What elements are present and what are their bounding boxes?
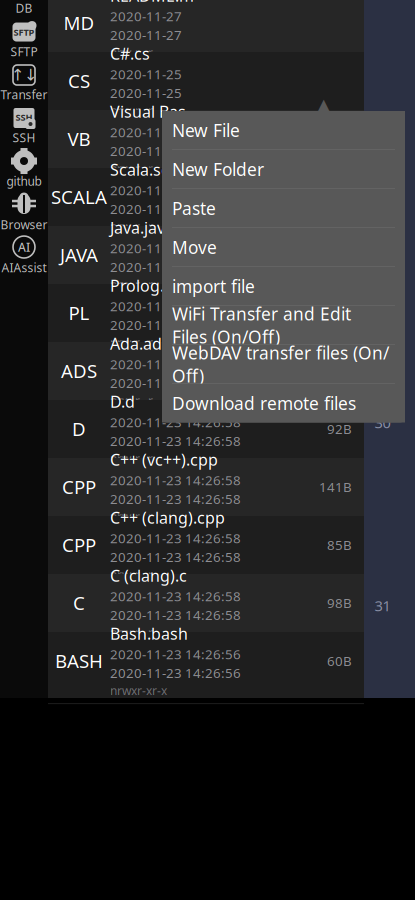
button[interactable]: C [48, 574, 364, 632]
staticText: 92B [327, 420, 352, 438]
button[interactable]: Move [162, 228, 405, 267]
staticText: BASH [55, 648, 103, 673]
button[interactable]: WiFi Transfer and Edit Files (On/Off) [162, 306, 405, 345]
button[interactable]: CS [48, 52, 364, 110]
button[interactable]: New Folder [162, 150, 405, 189]
staticText: WiFi Transfer and Edit Files (On/Off) [172, 302, 351, 348]
staticText: 2020-11-23 14:26:58 [110, 355, 241, 373]
staticText: DB [15, 0, 32, 16]
staticText: 2020-11-23 14:26:58 [110, 413, 241, 431]
button[interactable]: import file [162, 267, 405, 306]
button[interactable]: SFTP [0, 19, 48, 62]
staticText: 2020-11-23 14:26:58 [110, 606, 241, 624]
staticText: C [73, 590, 85, 615]
button[interactable]: Download remote files [162, 384, 405, 422]
button[interactable]: Browser [0, 191, 48, 234]
button[interactable]: JAVA [48, 226, 364, 284]
staticText: AI [18, 239, 30, 255]
staticText: 29 [374, 358, 390, 377]
button[interactable]: CPP [48, 516, 364, 574]
staticText: ▲ [316, 94, 331, 117]
staticText: 60B [327, 652, 352, 670]
staticText: nrw-r--r-- [110, 161, 161, 176]
staticText: CPP [62, 474, 96, 499]
staticText: 2020-11-23 14:26:58 [110, 471, 241, 489]
staticText: SSH [15, 111, 32, 123]
staticText: 85B [327, 536, 352, 554]
staticText: 2020-11-23 14:26:58 [110, 316, 241, 334]
staticText: 2020-11-23 14:26:58 [110, 432, 241, 450]
staticText: 2020-11-25 [110, 123, 182, 141]
staticText: SSH [12, 129, 35, 145]
button[interactable]: SSH [0, 105, 48, 148]
button[interactable]: AI [0, 234, 48, 277]
button[interactable]: ↑↓ [0, 62, 48, 105]
button[interactable]: New File [162, 111, 405, 150]
staticText: Paste [172, 197, 216, 220]
staticText: 2020-11-27 [110, 26, 182, 44]
staticText: ADS [61, 358, 97, 383]
staticText: WebDAV transfer files (On/Off) [172, 341, 389, 387]
staticText: 2020-11-23 14:26:56 [110, 664, 241, 682]
staticText: CPP [62, 532, 96, 557]
staticText: 2020-11-25 14:20:32 [110, 239, 241, 257]
button[interactable]: DB [0, 0, 48, 19]
button[interactable]: VB [48, 110, 364, 168]
button[interactable]: BASH [48, 632, 364, 690]
staticText: SCALA [51, 184, 107, 209]
button[interactable]: ADS [48, 342, 364, 400]
staticText: nrw-r--r-- [110, 451, 161, 466]
staticText: SFTP [13, 26, 34, 38]
staticText: D [72, 416, 86, 441]
staticText: SFTP [10, 43, 37, 59]
staticText: Prolog.pl [110, 275, 178, 296]
staticText: 2020-11-23 14:26:58 [110, 490, 241, 508]
staticText: nrw-r--r-- [110, 567, 161, 582]
button[interactable]: MD [48, 0, 364, 52]
staticText: README.m [110, 0, 194, 6]
button[interactable]: github [0, 148, 48, 191]
staticText: 30 [374, 413, 390, 432]
staticText: 2020-11-25 [110, 200, 182, 218]
staticText: 27 [374, 328, 390, 347]
button[interactable]: CPP [48, 458, 364, 516]
staticText: nrw-r--r-- [110, 103, 161, 118]
staticText: 2020-11-25 [110, 84, 182, 102]
staticText: import file [172, 275, 255, 298]
staticText: 28 [374, 343, 390, 362]
staticText: 2020-11-23 14:26:58 [110, 297, 241, 315]
staticText: 2020-11-23 14:26:58 [110, 548, 241, 566]
staticText: JAVA [60, 242, 98, 267]
button[interactable]: WebDAV transfer files (On/Off) [162, 345, 405, 384]
staticText: Scala.scala [110, 159, 191, 180]
staticText: Visual Bas [110, 101, 186, 122]
staticText: 2020-11-25 [110, 65, 182, 83]
staticText: PL [68, 300, 89, 325]
staticText: AIAssist [1, 259, 46, 275]
button[interactable]: PL [48, 284, 364, 342]
staticText: nrw-r--r-- [110, 277, 161, 292]
staticText: nrw-r--r-- [110, 45, 161, 60]
staticText: ↑↓ [11, 66, 37, 84]
staticText: nrw-r--r-- [110, 509, 161, 524]
staticText: 2020-11-27 [110, 7, 182, 25]
staticText: C++ (clang).cpp [110, 507, 225, 528]
staticText: New Folder [172, 158, 264, 181]
staticText: VB [67, 126, 90, 151]
staticText: Bash.bash [110, 623, 188, 644]
staticText: 2020-11-25 14:20:32 [110, 258, 241, 276]
button[interactable]: SCALA [48, 168, 364, 226]
button[interactable]: D [48, 400, 364, 458]
button[interactable]: Paste [162, 189, 405, 228]
staticText: github [6, 173, 41, 189]
staticText: 2020-11-23 14:26:56 [110, 645, 241, 663]
staticText: 2020-11-23 14:26:58 [110, 529, 241, 547]
staticText: Download remote files [172, 392, 356, 415]
staticText: 2020-11-25 [110, 142, 182, 160]
staticText: 141B [319, 478, 352, 496]
